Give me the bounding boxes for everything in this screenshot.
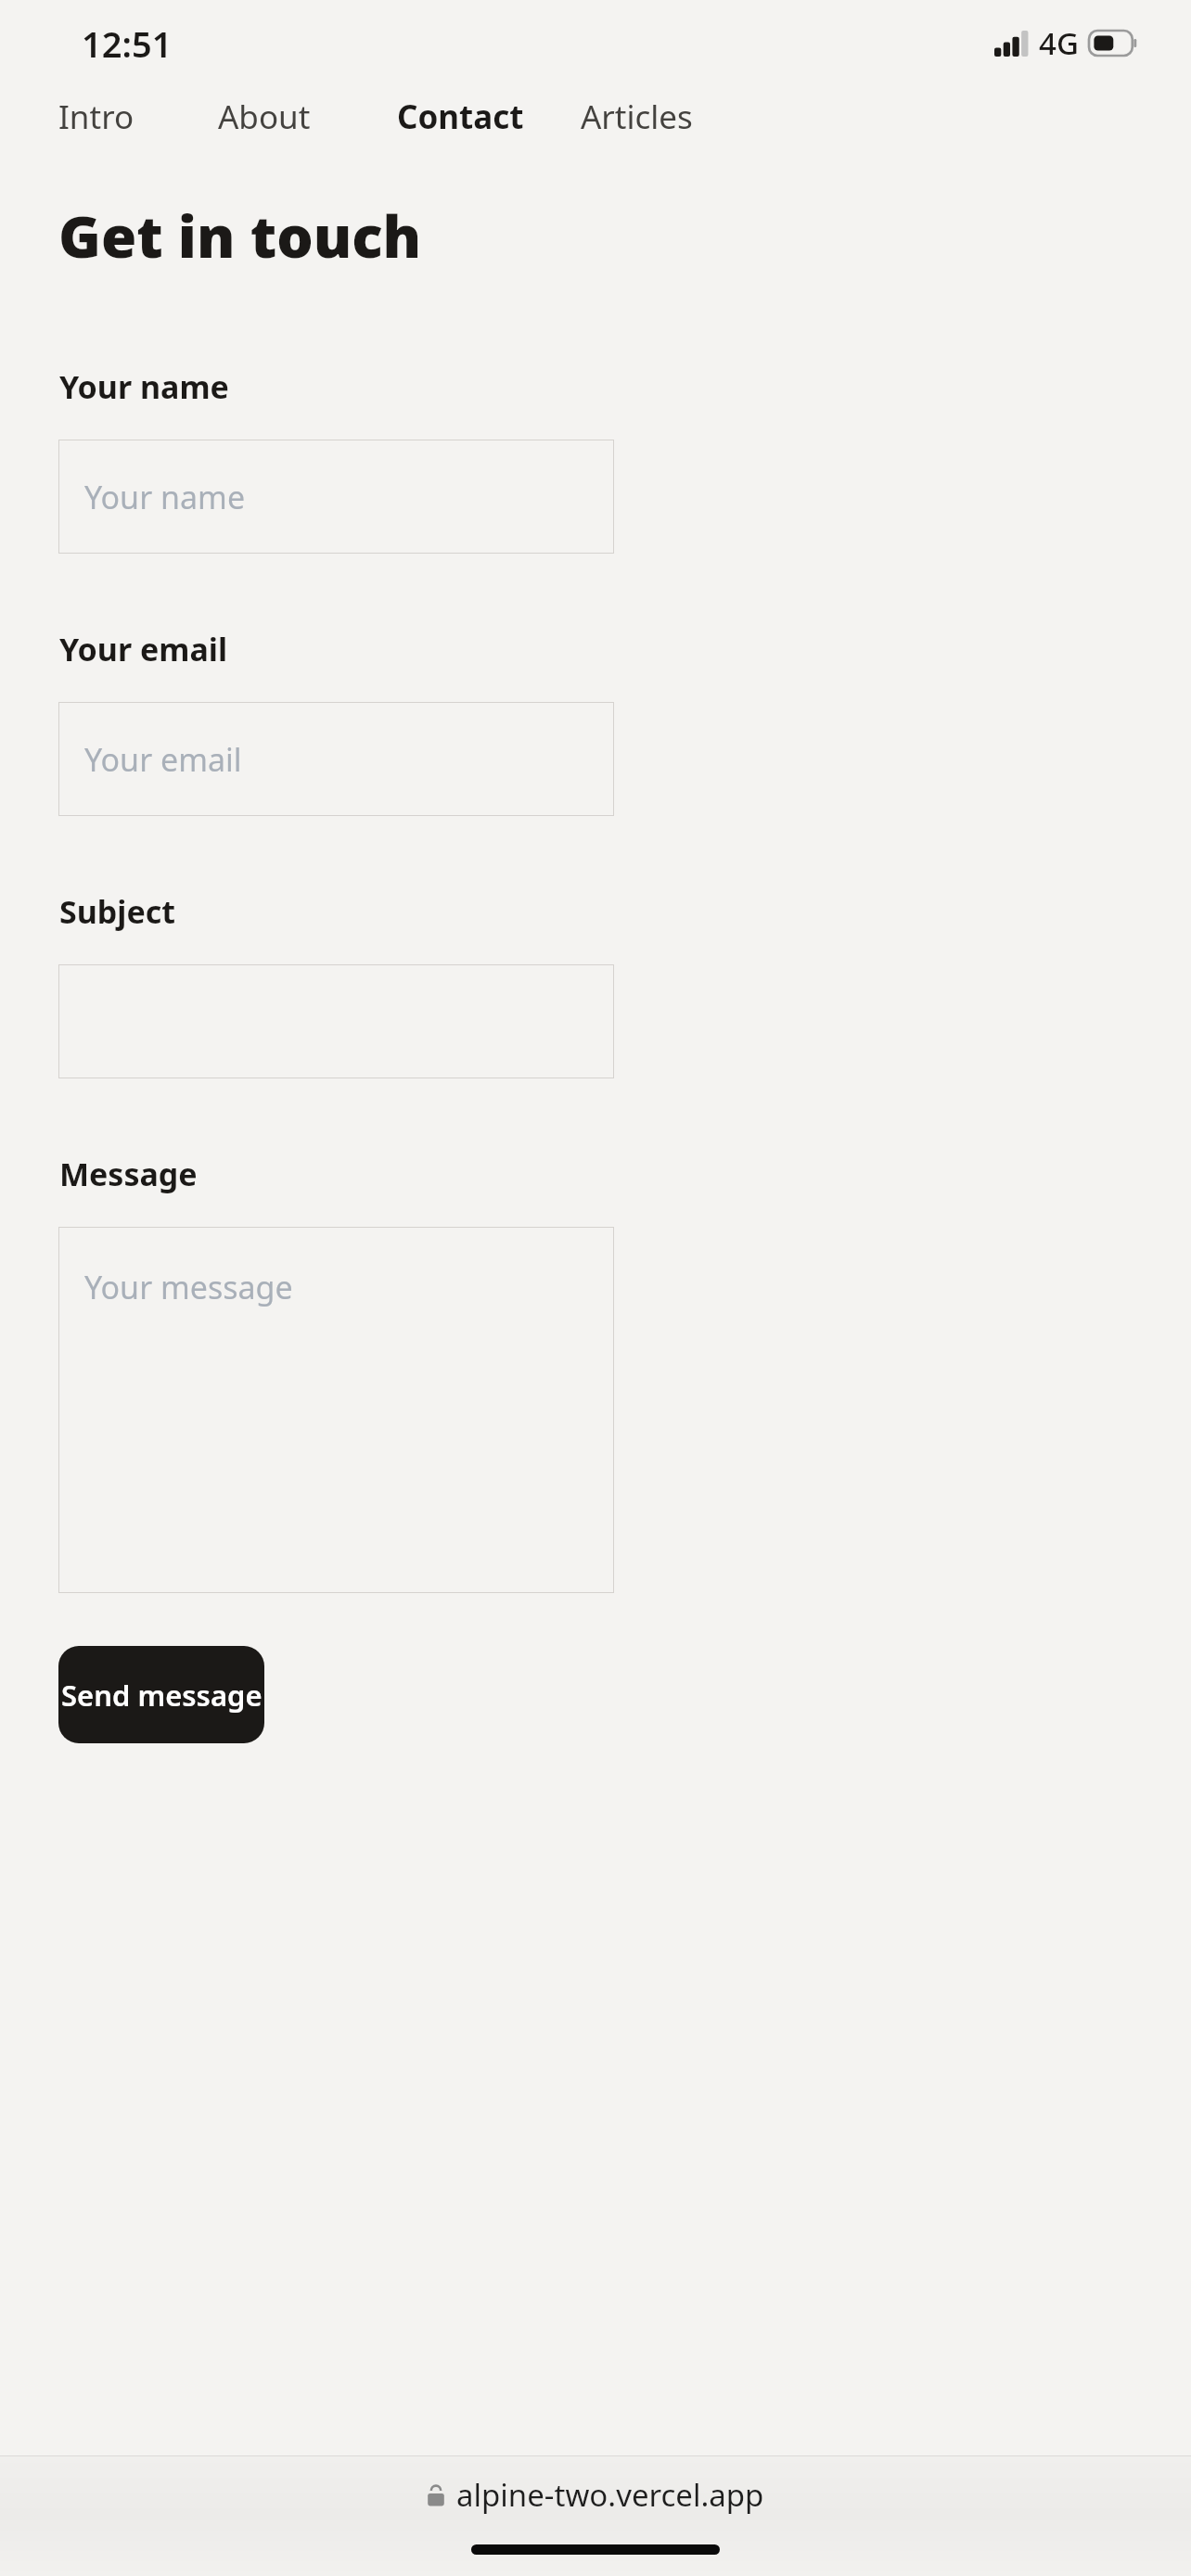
button[interactable] <box>58 964 614 1078</box>
staticText: Send message <box>61 1676 263 1715</box>
button[interactable]: Send message <box>58 1646 264 1743</box>
other: Secure connection <box>427 2483 445 2507</box>
button[interactable]: Articles <box>581 89 693 145</box>
button[interactable]: Contact <box>397 89 524 145</box>
staticText: Your name <box>59 365 229 408</box>
staticText: About <box>218 95 311 139</box>
button[interactable]: Your message <box>58 1227 614 1593</box>
staticText: Intro <box>58 95 134 139</box>
staticText: Your email <box>59 628 228 670</box>
button[interactable]: Intro <box>58 89 134 145</box>
staticText: Your email <box>84 738 242 781</box>
button[interactable]: About <box>218 89 311 145</box>
button[interactable]: Secure connection <box>427 2474 764 2516</box>
staticText: Your message <box>84 1266 293 1308</box>
staticText: alpine-two.vercel.app <box>456 2474 764 2516</box>
staticText: Subject <box>59 890 176 933</box>
staticText: Message <box>59 1153 198 1195</box>
staticText: 4G <box>1039 22 1079 64</box>
staticText: 12:51 <box>82 19 173 68</box>
staticText: Get in touch <box>58 197 422 274</box>
staticText: Your name <box>84 476 246 518</box>
staticText: Articles <box>581 95 693 139</box>
button[interactable]: Your email <box>58 702 614 816</box>
button[interactable]: Your name <box>58 440 614 554</box>
staticText: Contact <box>397 95 524 139</box>
